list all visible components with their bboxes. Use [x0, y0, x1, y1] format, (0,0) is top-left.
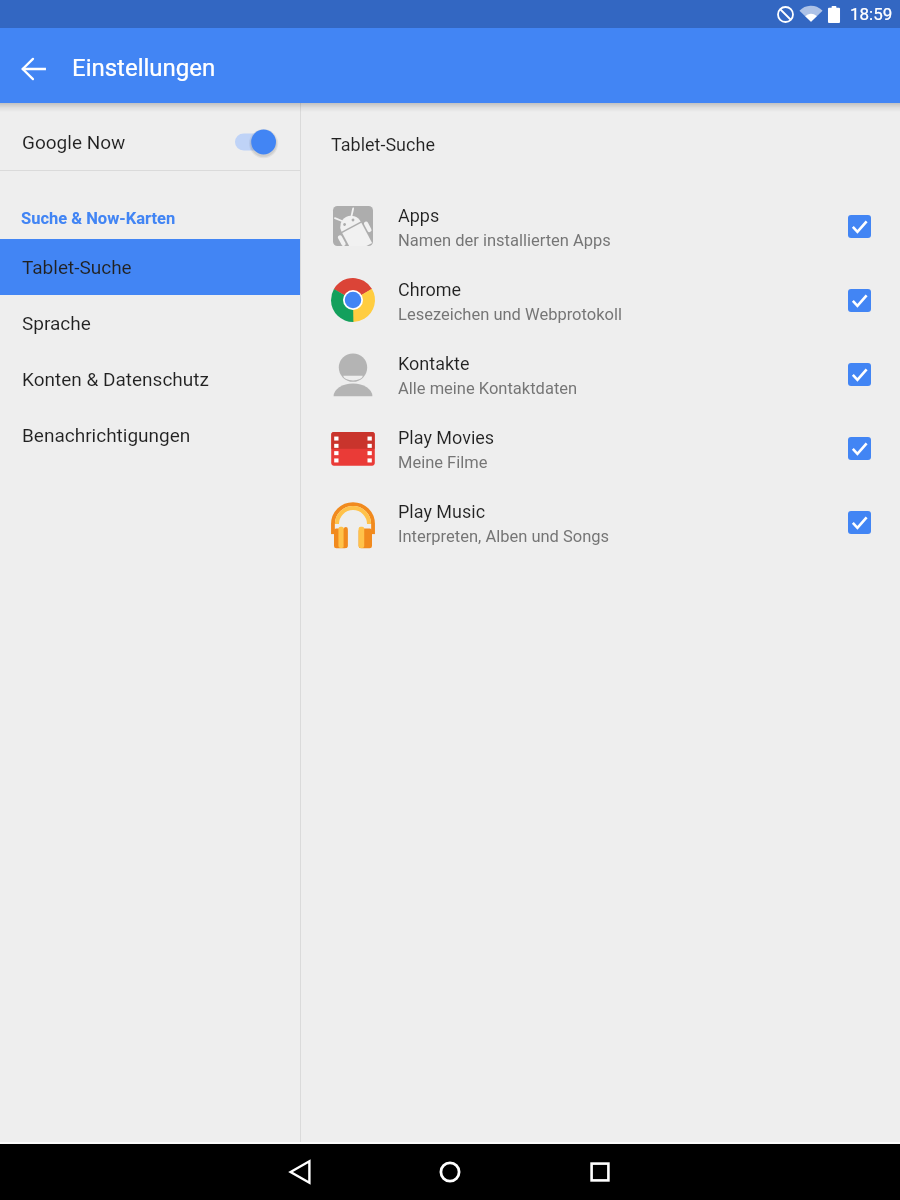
staticText: Tablet-Suche [331, 134, 435, 155]
button[interactable]: Home [410, 1144, 490, 1200]
button[interactable]: Kontakte checkbox [840, 355, 878, 393]
staticText: Play Music [398, 501, 486, 522]
staticText: Sprache [22, 312, 91, 334]
button[interactable]: Apps checkbox [840, 207, 878, 245]
staticText: Namen der installierten Apps [398, 231, 611, 250]
button[interactable]: Google Now toggle [229, 122, 281, 162]
staticText: Meine Filme [398, 453, 488, 472]
button[interactable]: Play Music [301, 485, 900, 559]
button[interactable]: Google Now [0, 103, 300, 170]
staticText: Google Now [22, 131, 126, 153]
staticText: Lesezeichen und Webprotokoll [398, 305, 622, 324]
button[interactable]: Back [10, 45, 57, 92]
button[interactable]: Benachrichtigungen [0, 407, 300, 463]
staticText: Interpreten, Alben und Songs [398, 527, 610, 546]
button[interactable]: Back [260, 1144, 340, 1200]
staticText: Einstellungen [72, 54, 216, 82]
staticText: Chrome [398, 279, 462, 300]
staticText: Play Movies [398, 427, 495, 448]
staticText: Benachrichtigungen [22, 424, 191, 446]
other: Do not disturb [777, 6, 794, 23]
button[interactable]: Konten & Datenschutz [0, 351, 300, 407]
staticText: 18:59 [850, 4, 893, 24]
button[interactable]: Play Music checkbox [840, 503, 878, 541]
button[interactable]: Kontakte [301, 337, 900, 411]
staticText: Apps [398, 205, 440, 226]
button[interactable]: Chrome [301, 263, 900, 337]
button[interactable]: Apps [301, 189, 900, 263]
button[interactable]: Chrome checkbox [840, 281, 878, 319]
staticText: Tablet-Suche [22, 256, 132, 278]
button[interactable]: Tablet-Suche [0, 239, 300, 295]
staticText: Kontakte [398, 353, 470, 374]
button[interactable]: Sprache [0, 295, 300, 351]
button[interactable]: Play Movies [301, 411, 900, 485]
button[interactable]: Play Movies checkbox [840, 429, 878, 467]
staticText: Suche & Now-Karten [21, 209, 176, 228]
staticText: Konten & Datenschutz [22, 368, 209, 390]
button[interactable]: Recents [560, 1144, 640, 1200]
staticText: Alle meine Kontaktdaten [398, 379, 578, 398]
